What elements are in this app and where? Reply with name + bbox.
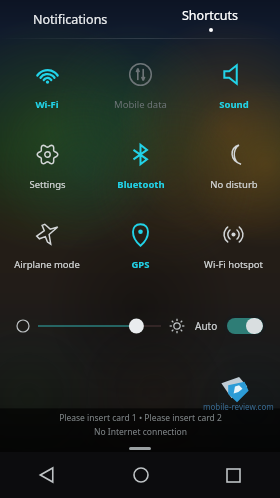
button[interactable]: Notifications <box>0 0 140 38</box>
button[interactable]: Wi-Fi hotspot <box>187 209 280 289</box>
staticText: mobile-review.com <box>203 401 274 412</box>
staticText: Sound <box>219 98 249 111</box>
button[interactable]: Sound <box>187 49 280 129</box>
staticText: Please insert card 1 • Please insert car… <box>59 412 222 424</box>
staticText: No Internet connection <box>94 426 187 438</box>
staticText: Shortcuts <box>182 7 239 24</box>
staticText: Bluetooth <box>117 178 165 191</box>
button[interactable]: Home <box>94 452 187 498</box>
button[interactable]: Settings <box>0 129 94 209</box>
button[interactable]: GPS <box>94 209 187 289</box>
button[interactable]: Auto brightness <box>227 318 263 334</box>
staticText: No disturb <box>210 178 258 191</box>
button[interactable]: Shortcuts <box>140 0 280 38</box>
staticText: GPS <box>131 258 150 271</box>
staticText: Settings <box>29 178 66 191</box>
button[interactable]: Recents <box>187 452 280 498</box>
button[interactable]: Bluetooth <box>94 129 187 209</box>
staticText: Auto <box>195 319 218 333</box>
button[interactable] <box>38 313 161 339</box>
button[interactable]: Airplane mode <box>0 209 94 289</box>
staticText: Mobile data <box>114 98 167 111</box>
button[interactable]: No disturb <box>187 129 280 209</box>
staticText: Notifications <box>33 11 108 28</box>
button[interactable]: Wi-Fi <box>0 49 94 129</box>
staticText: Wi-Fi hotspot <box>204 258 263 271</box>
staticText: Airplane mode <box>14 258 80 271</box>
button[interactable]: Mobile data <box>94 49 187 129</box>
button[interactable]: Back <box>0 452 94 498</box>
staticText: Wi-Fi <box>35 98 59 111</box>
